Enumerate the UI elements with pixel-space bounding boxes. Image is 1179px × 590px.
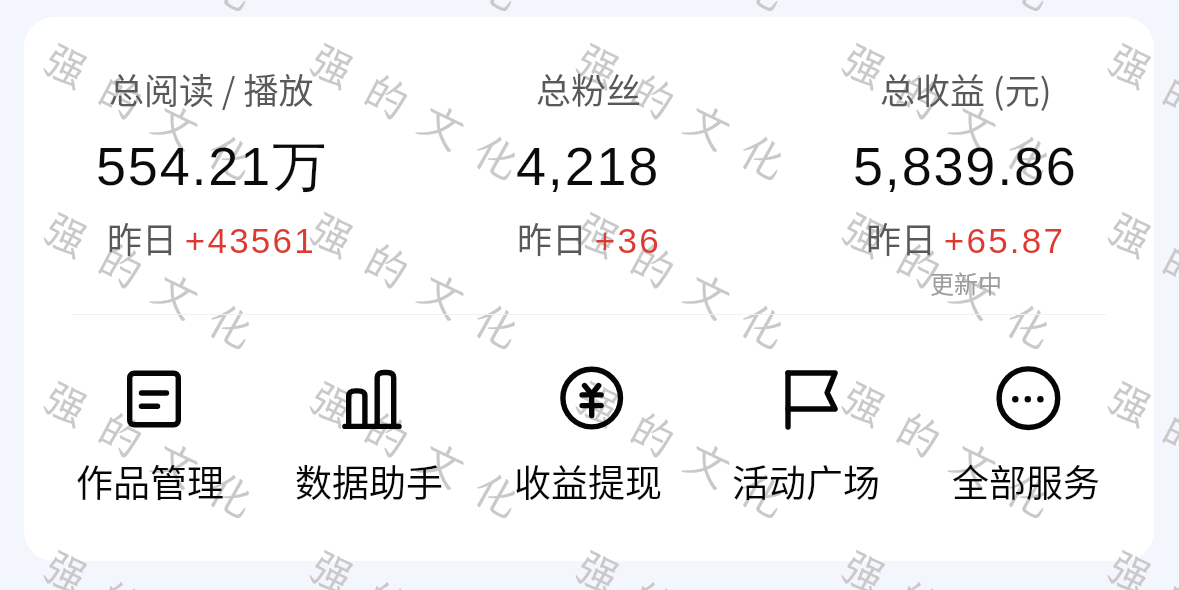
button[interactable] (401, 72, 777, 292)
other: 全部服务 (996, 365, 1062, 431)
other: 活动广场 (778, 365, 844, 431)
staticText: 总粉丝 (536, 63, 642, 114)
staticText: 4,218 (516, 136, 661, 196)
other: 收益提现 (559, 365, 625, 431)
staticText: 昨日 +36 (517, 212, 661, 263)
button[interactable] (492, 357, 692, 525)
staticText: 554.21万 (96, 133, 328, 201)
staticText: 作品管理 (76, 454, 224, 508)
button[interactable] (24, 72, 400, 292)
staticText: 昨日 +43561 (107, 212, 316, 263)
staticText: 5,839.86 (853, 136, 1078, 196)
button[interactable] (711, 357, 911, 525)
button[interactable] (929, 357, 1129, 525)
staticText: 总收益 (元) (880, 63, 1052, 114)
button[interactable] (54, 357, 254, 525)
staticText: 活动广场 (732, 454, 880, 508)
staticText: 数据助手 (295, 454, 443, 508)
other: 作品管理 (121, 365, 187, 431)
staticText: 更新中 (930, 265, 1002, 300)
staticText: 昨日 +65.87 (866, 212, 1066, 263)
button[interactable] (273, 357, 473, 525)
staticText: 全部服务 (952, 454, 1100, 508)
button[interactable] (778, 72, 1154, 292)
staticText: 总阅读 / 播放 (109, 63, 314, 114)
staticText: 收益提现 (514, 454, 662, 508)
other: 数据助手 (340, 365, 406, 431)
